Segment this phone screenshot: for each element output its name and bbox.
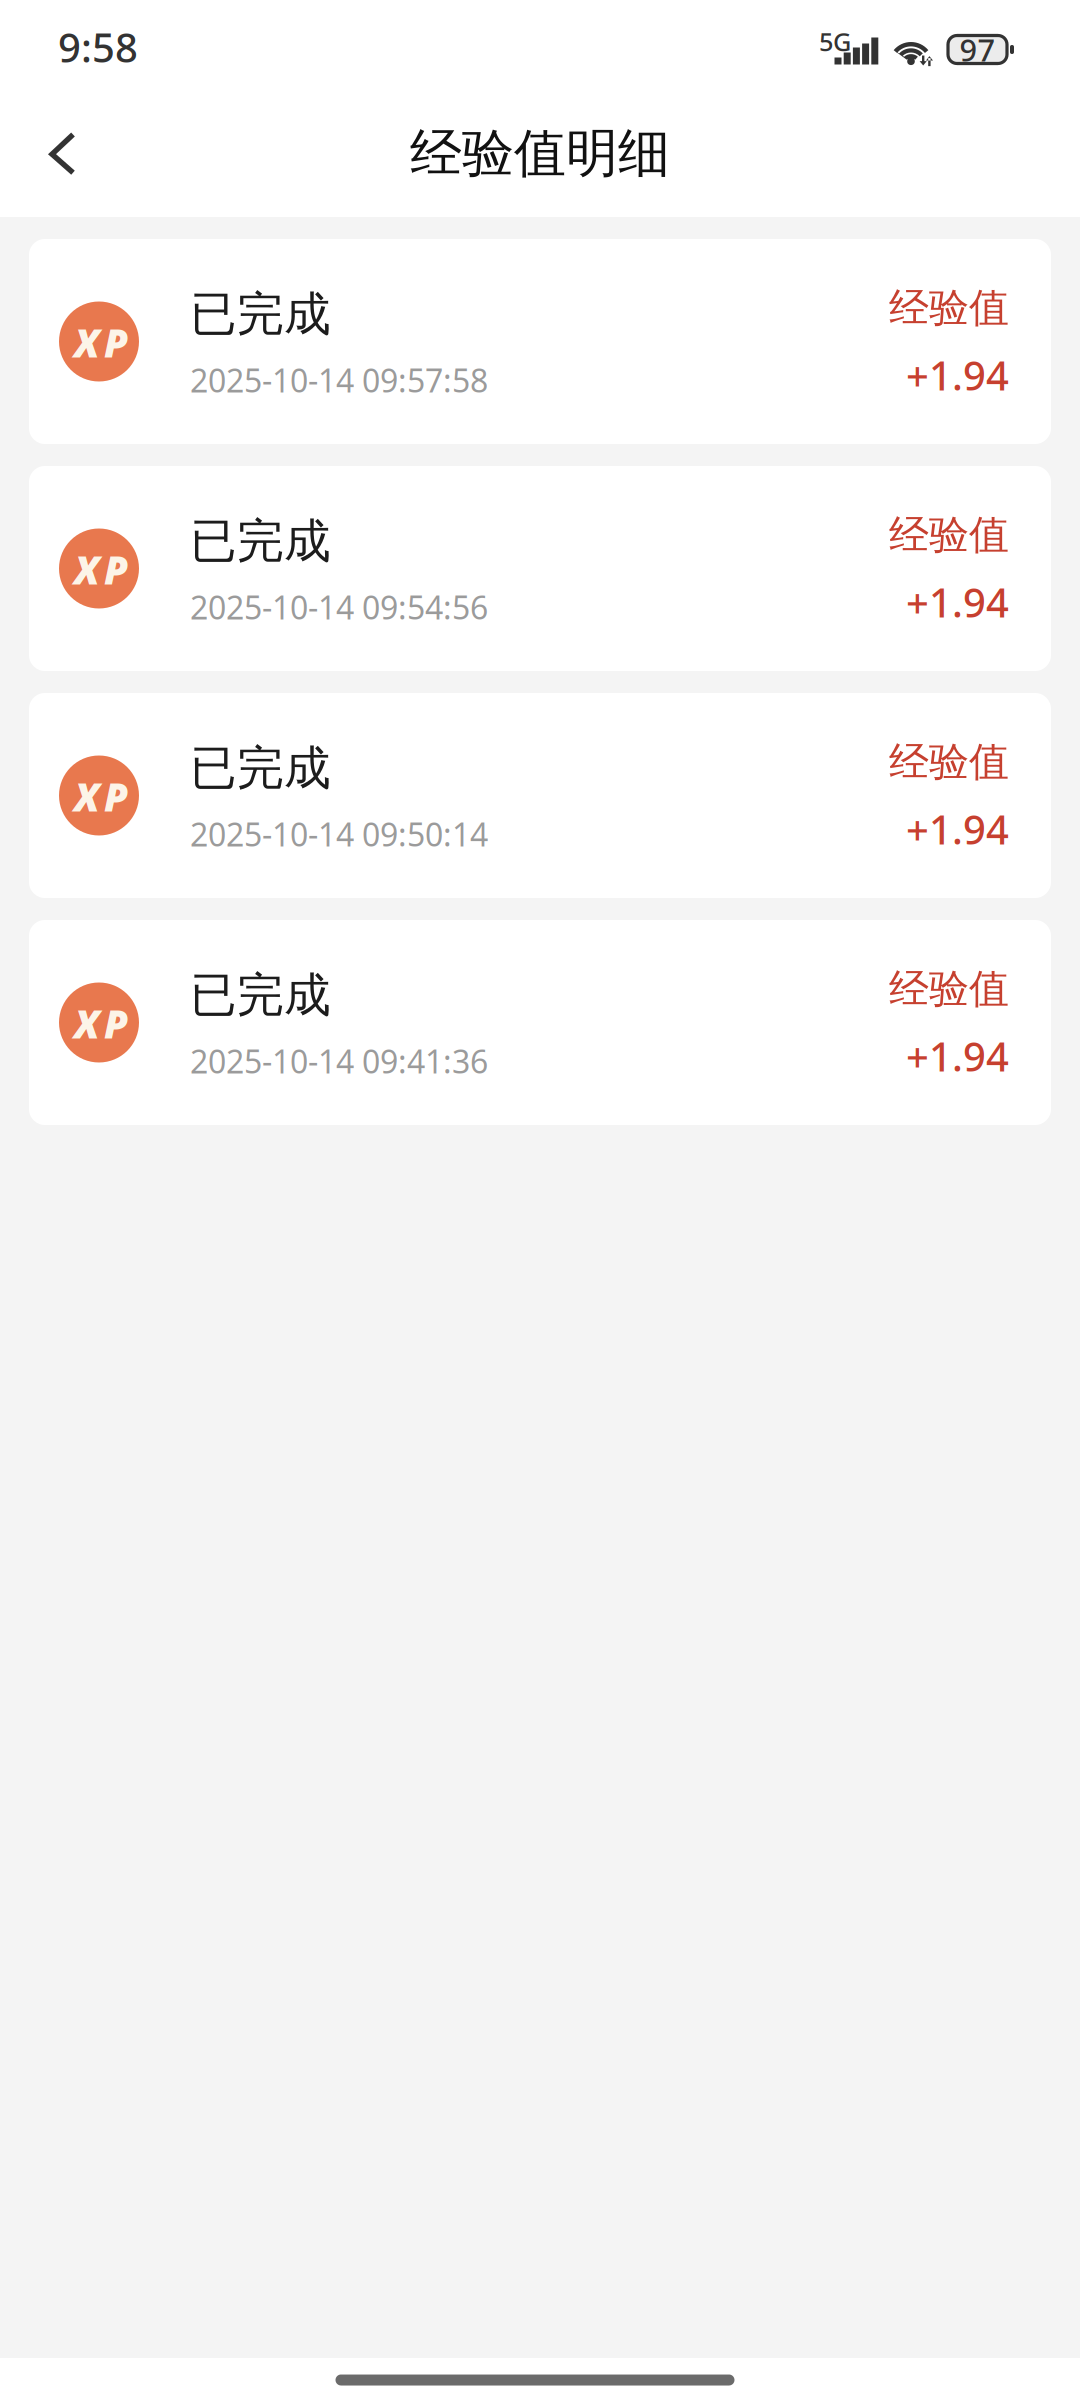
staticText: 2025-10-14 09:50:14 bbox=[190, 813, 488, 855]
staticText: 5G bbox=[819, 24, 851, 58]
staticText: 经验值 bbox=[889, 283, 1009, 332]
staticText: +1.94 bbox=[906, 1029, 1009, 1083]
staticText: XP bbox=[74, 316, 128, 369]
staticText: 已完成 bbox=[190, 286, 331, 343]
button[interactable]: Back bbox=[18, 103, 108, 203]
staticText: 9:58 bbox=[58, 20, 138, 73]
staticText: 2025-10-14 09:41:36 bbox=[190, 1040, 488, 1082]
staticText: 经验值 bbox=[889, 510, 1009, 559]
staticText: +1.94 bbox=[906, 348, 1009, 402]
button[interactable]: XP bbox=[29, 239, 1051, 444]
staticText: 97 bbox=[959, 29, 995, 70]
staticText: 经验值明细 bbox=[410, 122, 670, 185]
staticText: XP bbox=[74, 543, 128, 596]
staticText: 已完成 bbox=[190, 740, 331, 797]
staticText: XP bbox=[74, 770, 128, 823]
staticText: +1.94 bbox=[906, 575, 1009, 629]
staticText: 经验值 bbox=[889, 964, 1009, 1013]
staticText: 2025-10-14 09:54:56 bbox=[190, 586, 488, 628]
staticText: XP bbox=[74, 997, 128, 1050]
staticText: 已完成 bbox=[190, 967, 331, 1024]
button[interactable]: XP bbox=[29, 466, 1051, 671]
staticText: 经验值 bbox=[889, 737, 1009, 786]
staticText: 已完成 bbox=[190, 513, 331, 570]
button[interactable]: XP bbox=[29, 920, 1051, 1125]
staticText: +1.94 bbox=[906, 802, 1009, 856]
staticText: 2025-10-14 09:57:58 bbox=[190, 359, 488, 401]
button[interactable]: XP bbox=[29, 693, 1051, 898]
